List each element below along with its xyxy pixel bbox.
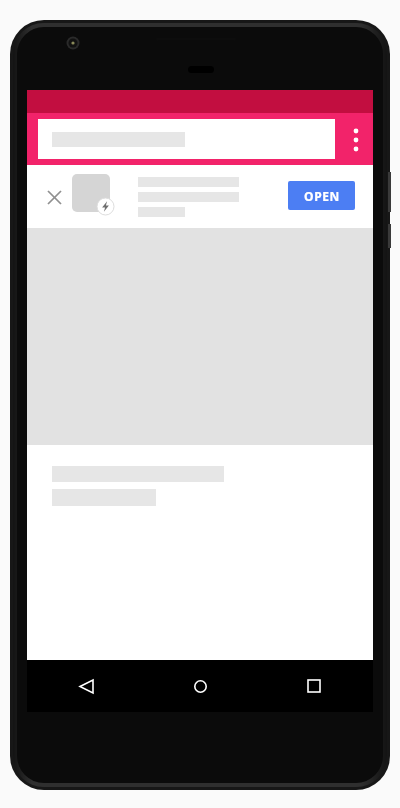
button[interactable]: Home [183,669,217,703]
button[interactable]: OPEN [288,181,355,210]
button[interactable]: Dismiss [41,184,67,210]
button[interactable]: More options [339,113,373,165]
button[interactable]: Recent apps [297,669,331,703]
staticText: OPEN [304,188,340,204]
button[interactable]: Back [69,669,103,703]
button[interactable] [38,119,335,159]
